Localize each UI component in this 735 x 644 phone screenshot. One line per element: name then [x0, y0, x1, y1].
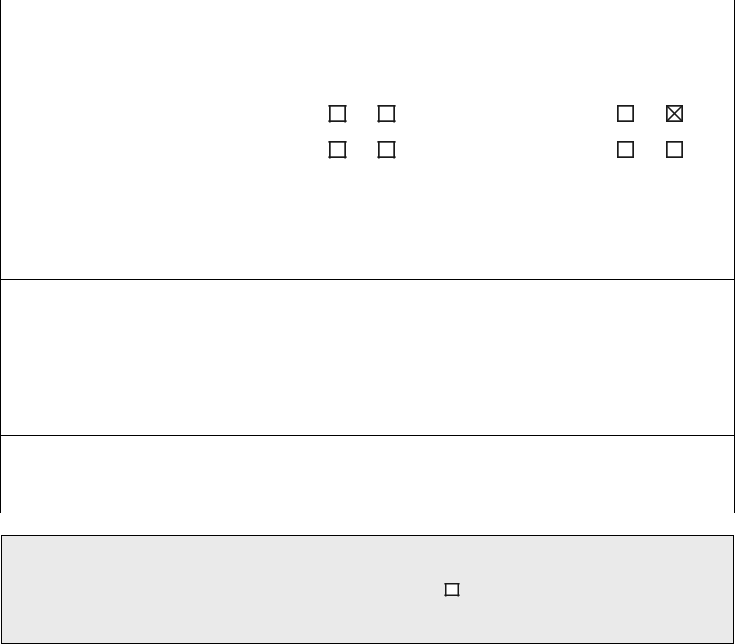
button[interactable]: Item 1	[0, 280, 735, 436]
button[interactable]: Account	[616, 104, 684, 159]
button[interactable]: Item 2	[0, 436, 735, 513]
button[interactable]: Navigate	[444, 582, 460, 597]
button[interactable]: Title	[328, 104, 396, 159]
